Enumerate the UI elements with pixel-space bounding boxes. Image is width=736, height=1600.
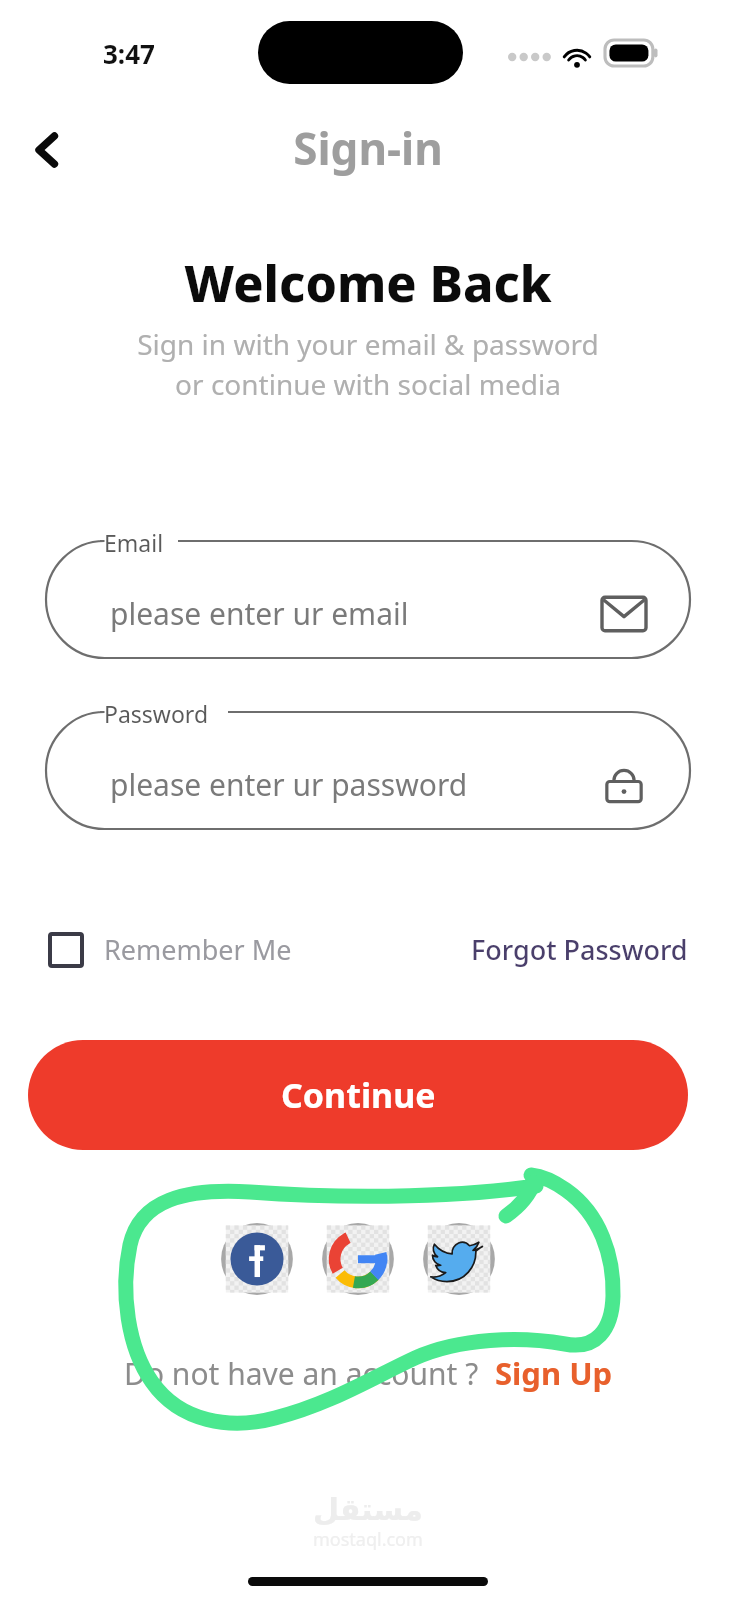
staticText: Welcome Back bbox=[0, 249, 736, 317]
button[interactable]: Sign Up bbox=[495, 1352, 613, 1394]
staticText: Forgot Password bbox=[471, 931, 688, 968]
button[interactable]: Sign in with Google bbox=[319, 1220, 397, 1298]
button[interactable]: Password bbox=[46, 712, 690, 829]
staticText: please enter ur password bbox=[110, 764, 468, 805]
staticText: please enter ur email bbox=[110, 593, 409, 634]
staticText: Do not have an account ? bbox=[124, 1353, 479, 1394]
button[interactable]: Forgot Password bbox=[471, 931, 688, 968]
staticText: Continue bbox=[281, 1072, 436, 1118]
staticText: Sign-in bbox=[0, 118, 736, 178]
button[interactable]: Sign in with Twitter bbox=[420, 1220, 498, 1298]
staticText: mostaql.com bbox=[313, 1527, 423, 1552]
staticText: Email bbox=[104, 527, 164, 558]
button[interactable]: Back bbox=[16, 118, 80, 182]
staticText: Password bbox=[104, 698, 209, 729]
button[interactable]: Remember Me bbox=[48, 931, 292, 968]
staticText: Sign Up bbox=[495, 1352, 613, 1394]
staticText: مستقل bbox=[313, 1492, 423, 1527]
button[interactable]: Continue bbox=[28, 1040, 688, 1150]
staticText: Sign in with your email & password or co… bbox=[0, 325, 736, 404]
button[interactable]: Email bbox=[46, 541, 690, 658]
button[interactable]: Sign in with Facebook bbox=[218, 1220, 296, 1298]
staticText: 3:47 bbox=[103, 36, 155, 71]
staticText: Remember Me bbox=[104, 931, 292, 968]
